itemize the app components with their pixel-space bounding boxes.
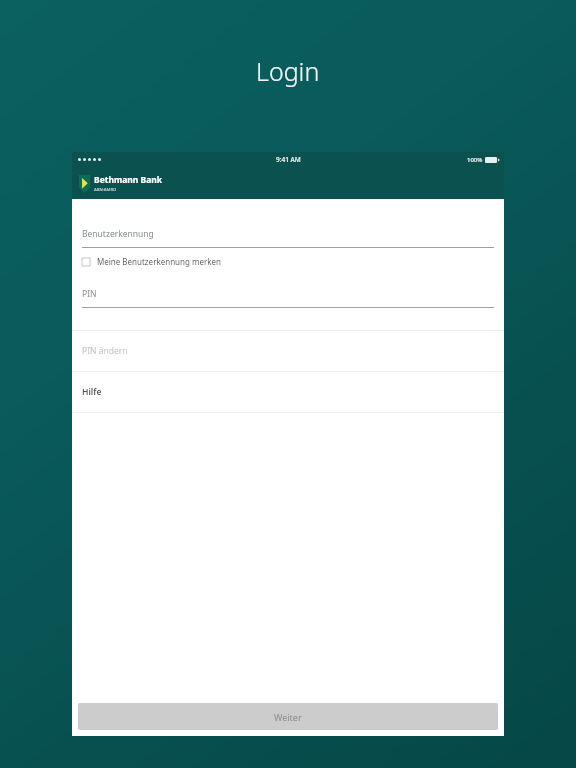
button[interactable]: Weiter	[78, 703, 498, 730]
staticText: 9:41 AM	[276, 155, 301, 164]
staticText: ABN·AMRO	[94, 187, 117, 193]
button[interactable]: PIN ändern	[72, 331, 504, 371]
staticText: PIN	[82, 288, 97, 300]
staticText: 100%	[467, 156, 483, 164]
button[interactable]: PIN	[72, 288, 504, 308]
staticText: Bethmann Bank	[94, 174, 163, 186]
staticText: Benutzerkennung	[82, 228, 154, 240]
button[interactable]: Hilfe	[72, 372, 504, 412]
button[interactable]: Meine Benutzerkennung merken	[72, 248, 504, 275]
button[interactable]: Benutzerkennung	[72, 228, 504, 248]
staticText: Meine Benutzerkennung merken	[97, 256, 222, 267]
staticText: Weiter	[274, 711, 302, 723]
staticText: Login	[256, 54, 320, 88]
staticText: Hilfe	[82, 386, 102, 398]
staticText: PIN ändern	[82, 345, 128, 357]
